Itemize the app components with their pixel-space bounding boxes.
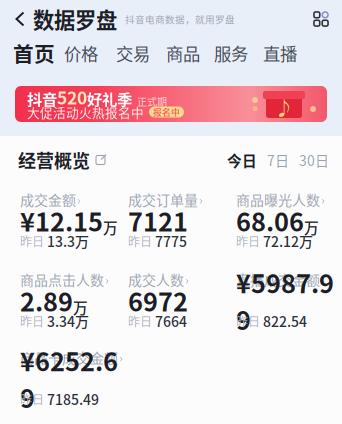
staticText: 抖音 <box>27 87 57 109</box>
staticText: 服务 <box>214 40 248 66</box>
staticText: 商品卡成交金额 <box>20 347 118 368</box>
staticText: 3.34万 <box>47 311 89 331</box>
button[interactable]: 商品曝光人数 <box>236 190 342 249</box>
staticText: 昨日 <box>236 312 260 330</box>
staticText: 数据罗盘 <box>33 4 117 34</box>
staticText: 68.06 <box>236 202 304 239</box>
button[interactable]: 应用中心 <box>308 4 334 34</box>
staticText: 7日 <box>267 150 289 170</box>
staticText: 正式期 <box>137 94 167 109</box>
staticText: › <box>185 271 189 288</box>
staticText: 昨日 <box>128 312 152 330</box>
staticText: › <box>105 271 109 288</box>
staticText: 万 <box>103 217 118 238</box>
staticText: 72.12万 <box>263 231 313 251</box>
staticText: 520 <box>57 84 87 110</box>
button[interactable]: 成交人数 <box>128 270 236 329</box>
staticText: 万 <box>73 297 88 318</box>
staticText: 822.54 <box>263 311 307 331</box>
button[interactable]: 商品卡成交金额 <box>20 348 128 407</box>
button[interactable]: 服务 <box>214 38 263 68</box>
button[interactable]: 7日 <box>260 148 296 172</box>
button[interactable]: 首页 <box>13 38 64 68</box>
staticText: › <box>119 349 123 366</box>
button[interactable]: 直播 <box>263 38 312 68</box>
staticText: 昨日 <box>20 232 44 250</box>
staticText: 7775 <box>155 231 187 251</box>
staticText: › <box>321 271 325 288</box>
staticText: 成交金额 <box>20 189 76 210</box>
staticText: 7185.49 <box>47 389 99 409</box>
staticText: 抖音电商数据，就用罗盘 <box>125 12 235 26</box>
staticText: 6972 <box>128 282 188 319</box>
button[interactable]: 成交订单量 <box>128 190 236 249</box>
staticText: 昨日 <box>128 232 152 250</box>
staticText: 30日 <box>299 150 329 170</box>
staticText: 大促活动火热报名中 <box>27 103 144 121</box>
button[interactable]: 成交金额 <box>20 190 128 249</box>
staticText: › <box>77 191 81 208</box>
staticText: 7121 <box>128 202 188 239</box>
staticText: ¥6252.69 <box>20 342 118 415</box>
staticText: 7664 <box>155 311 187 331</box>
staticText: 今日 <box>227 149 257 171</box>
staticText: 价格 <box>64 40 98 66</box>
staticText: 直播 <box>263 40 297 66</box>
staticText: 报名中 <box>153 106 180 118</box>
staticText: › <box>321 191 325 208</box>
staticText: 成交人数 <box>128 269 184 290</box>
staticText: 商品 <box>166 40 200 66</box>
staticText: 13.3万 <box>47 231 89 251</box>
staticText: 成交订单量 <box>128 189 198 210</box>
staticText: 昨日 <box>20 390 44 408</box>
button[interactable]: 今日 <box>224 148 260 172</box>
staticText: 交易 <box>116 40 150 66</box>
staticText: › <box>199 191 203 208</box>
staticText: 经营概览 <box>18 147 90 173</box>
staticText: 万 <box>304 217 319 238</box>
button[interactable]: 交易 <box>116 38 166 68</box>
staticText: 商品点击人数 <box>20 269 104 290</box>
staticText: 首页 <box>13 38 55 68</box>
button[interactable]: 直播成交金额 <box>236 270 342 329</box>
staticText: 昨日 <box>236 232 260 250</box>
button[interactable]: 商品点击人数 <box>20 270 128 329</box>
staticText: 商品曝光人数 <box>236 189 320 210</box>
staticText: 2.89 <box>20 282 73 319</box>
staticText: 好礼季 <box>87 87 132 109</box>
button[interactable]: 返回 <box>7 4 33 34</box>
staticText: 昨日 <box>20 312 44 330</box>
staticText: ¥5987.99 <box>236 264 334 337</box>
staticText: ¥12.15 <box>20 202 103 239</box>
button[interactable]: 价格 <box>64 38 116 68</box>
staticText: ♪ <box>274 92 294 121</box>
button[interactable]: 抖音 <box>15 86 327 122</box>
button[interactable]: 30日 <box>296 148 332 172</box>
staticText: 直播成交金额 <box>236 269 320 290</box>
button[interactable]: 商品 <box>166 38 214 68</box>
